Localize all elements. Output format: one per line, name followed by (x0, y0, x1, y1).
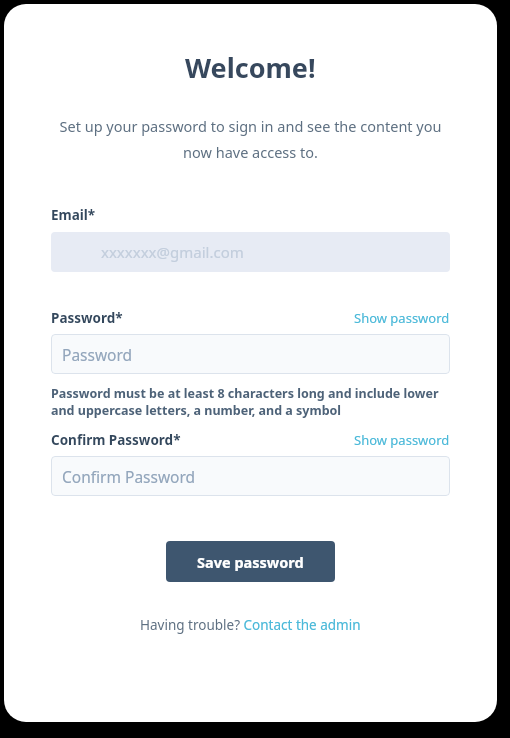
staticText: Show password (354, 309, 450, 327)
button[interactable]: Save password (166, 541, 335, 582)
staticText: Set up your password to sign in and see … (50, 116, 451, 162)
staticText: Password (62, 344, 133, 365)
staticText: Confirm Password* (51, 431, 181, 449)
staticText: Having trouble? Contact the admin (140, 616, 361, 634)
button[interactable]: Having trouble? Contact the admin (136, 612, 365, 638)
staticText: Save password (197, 552, 304, 572)
button[interactable]: xxxxxxx@gmail.com (51, 232, 450, 272)
staticText: xxxxxxx@gmail.com (101, 242, 244, 262)
button[interactable]: Show password (354, 309, 450, 327)
staticText: Welcome! (185, 49, 316, 86)
staticText: Email* (51, 206, 96, 224)
button[interactable]: Confirm Password (51, 456, 450, 496)
staticText: Show password (354, 431, 450, 449)
button[interactable]: Show password (354, 431, 450, 449)
button[interactable]: Password (51, 334, 450, 374)
staticText: Password* (51, 309, 123, 327)
staticText: Confirm Password (62, 466, 196, 487)
staticText: Password must be at least 8 characters l… (51, 385, 450, 419)
